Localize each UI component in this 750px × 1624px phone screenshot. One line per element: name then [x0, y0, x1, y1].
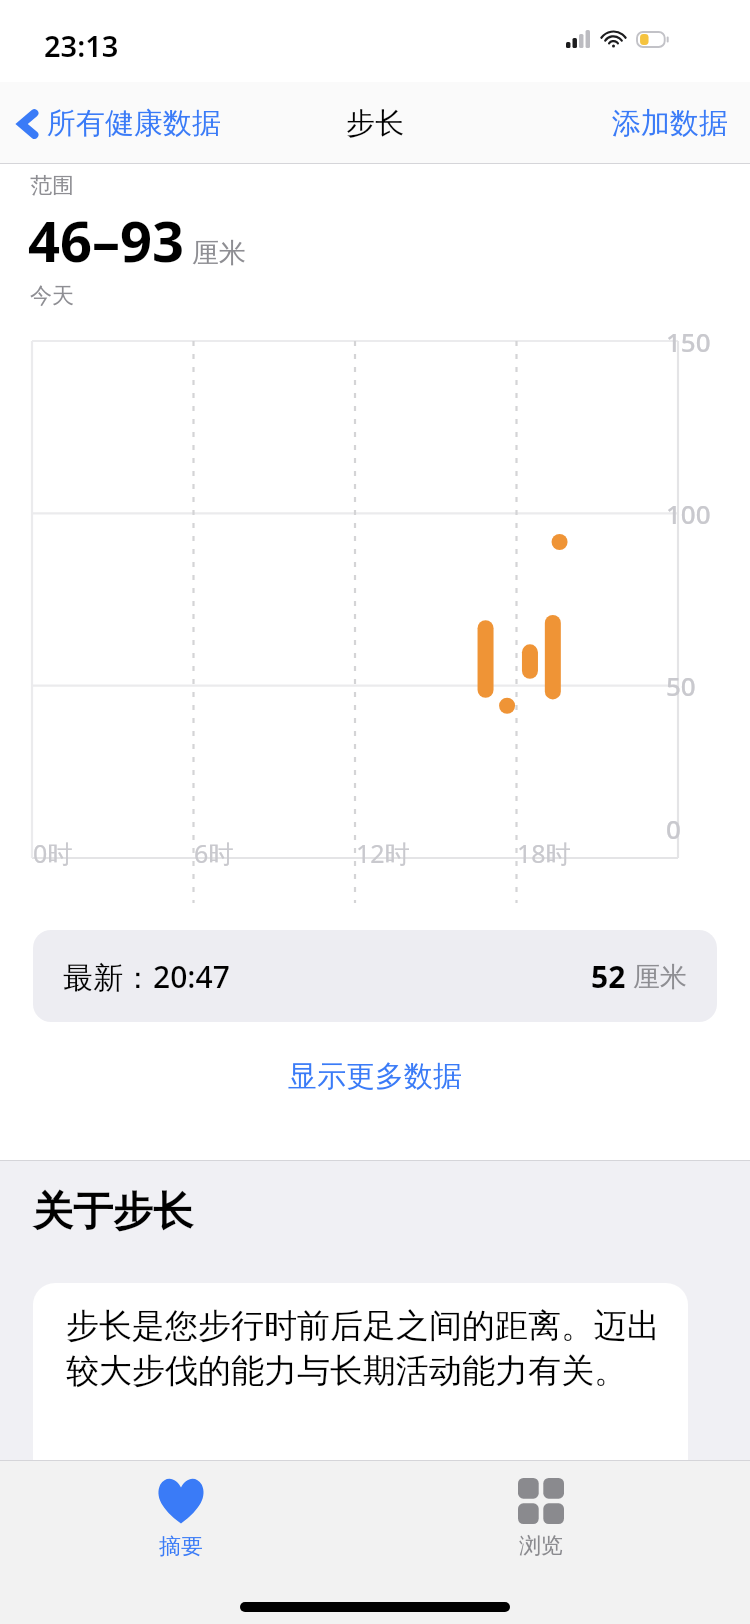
staticText: 50 [666, 668, 696, 703]
staticText: 范围 [30, 172, 74, 200]
staticText: 最新：20:47 [63, 956, 230, 997]
staticText: 23:13 [44, 26, 119, 65]
staticText: 摘要 [159, 1533, 203, 1561]
other: 返回 [18, 108, 38, 140]
staticText: 52 [591, 956, 626, 997]
staticText: 0时 [33, 836, 73, 870]
staticText: 46–93 [28, 202, 185, 278]
staticText: 步长 [346, 105, 404, 142]
staticText: 6时 [194, 836, 234, 870]
staticText: 所有健康数据 [47, 105, 221, 142]
button[interactable]: 最新：20:47 [33, 930, 717, 1022]
button[interactable]: 添加数据 [612, 105, 750, 142]
staticText: 150 [666, 324, 711, 359]
staticText: 步长是您步行时前后足之间的距离。迈出较大步伐的能力与长期活动能力有关。 [66, 1305, 672, 1392]
staticText: 100 [666, 496, 711, 531]
staticText: 厘米 [192, 236, 246, 270]
button[interactable]: 返回 [18, 105, 227, 142]
staticText: 今天 [30, 282, 74, 310]
staticText: 18时 [517, 836, 571, 870]
staticText: 厘米 [633, 960, 687, 994]
staticText: 浏览 [519, 1532, 563, 1560]
staticText: 关于步长 [33, 1186, 193, 1236]
button[interactable]: 显示更多数据 [0, 1046, 750, 1106]
staticText: 显示更多数据 [288, 1058, 462, 1095]
staticText: 0 [666, 811, 681, 846]
staticText: 12时 [356, 836, 410, 870]
button[interactable]: 浏览 [481, 1461, 601, 1560]
button[interactable]: 摘要 [121, 1461, 241, 1561]
